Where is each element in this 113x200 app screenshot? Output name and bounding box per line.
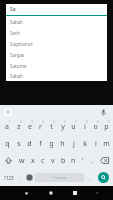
staticText: v xyxy=(51,156,55,166)
staticText: p xyxy=(104,122,109,132)
staticText: 6 xyxy=(64,120,66,124)
staticText: , xyxy=(91,157,93,165)
staticText: Sech xyxy=(10,30,20,36)
button[interactable]: Suggestions xyxy=(4,108,12,116)
staticText: m xyxy=(103,139,110,149)
staticText: 8 xyxy=(86,120,88,124)
button[interactable]: n xyxy=(68,152,78,169)
button[interactable]: h xyxy=(57,135,68,152)
button[interactable]: Back xyxy=(18,186,34,200)
staticText: ' xyxy=(82,156,84,166)
staticText: j xyxy=(73,139,75,149)
staticText: 1 xyxy=(9,120,11,124)
button[interactable]: k xyxy=(79,135,90,152)
staticText: e xyxy=(28,122,32,132)
staticText: c xyxy=(41,156,45,166)
button[interactable]: g xyxy=(46,135,57,152)
button[interactable]: , xyxy=(88,152,96,169)
staticText: ?123 xyxy=(4,175,14,181)
staticText: Sabah xyxy=(10,19,24,25)
staticText: : xyxy=(19,173,21,178)
staticText: g xyxy=(49,139,54,149)
staticText: . xyxy=(89,174,91,182)
button[interactable]: b xyxy=(58,152,68,169)
staticText: Sargas xyxy=(10,52,25,58)
button[interactable]: 0 xyxy=(101,118,112,135)
button[interactable]: Sabah xyxy=(6,71,107,81)
button[interactable]: Recent apps xyxy=(67,186,82,200)
button[interactable]: Backspace xyxy=(96,152,112,169)
button[interactable]: c xyxy=(38,152,48,169)
staticText: d xyxy=(27,139,32,149)
button[interactable]: Voice input xyxy=(98,107,108,117)
button[interactable]: Saturne xyxy=(6,60,107,71)
button[interactable]: 5 xyxy=(46,118,57,135)
staticText: Français xyxy=(53,175,67,180)
button[interactable]: Sagittarius xyxy=(6,38,107,49)
staticText: l xyxy=(95,139,97,149)
staticText: q xyxy=(5,139,10,149)
button[interactable]: Home xyxy=(43,186,58,200)
button[interactable]: d xyxy=(24,135,35,152)
staticText: Sagittarius xyxy=(10,41,33,47)
button[interactable]: 1 xyxy=(1,118,13,135)
staticText: z xyxy=(17,122,21,132)
button[interactable]: Sargas xyxy=(6,49,107,60)
button[interactable]: q xyxy=(1,135,13,152)
staticText: s xyxy=(17,139,21,149)
button[interactable]: Sa xyxy=(6,4,107,15)
button[interactable]: 9 xyxy=(90,118,101,135)
button[interactable]: 4 xyxy=(35,118,46,135)
button[interactable]: w xyxy=(16,152,27,169)
button[interactable]: 3 xyxy=(24,118,35,135)
button[interactable]: x xyxy=(27,152,38,169)
staticText: t xyxy=(50,122,53,132)
staticText: r xyxy=(39,122,42,132)
staticText: Saturne xyxy=(10,63,27,69)
button[interactable]: Space xyxy=(35,173,84,182)
button[interactable]: . xyxy=(85,169,94,186)
staticText: u xyxy=(71,122,76,132)
staticText: 3 xyxy=(31,120,33,124)
button[interactable]: 8 xyxy=(79,118,90,135)
staticText: n xyxy=(71,156,76,166)
button[interactable]: v xyxy=(48,152,58,169)
button[interactable]: Hide keyboard xyxy=(90,186,104,200)
button[interactable]: Sabah xyxy=(6,16,107,27)
staticText: f xyxy=(39,139,42,149)
staticText: w xyxy=(19,156,25,166)
staticText: 4 xyxy=(42,120,44,124)
staticText: ; xyxy=(19,178,21,183)
staticText: i xyxy=(84,122,86,132)
staticText: o xyxy=(93,122,98,132)
staticText: y xyxy=(61,122,65,132)
button[interactable]: 2 xyxy=(13,118,24,135)
staticText: Sabah xyxy=(10,73,24,79)
button[interactable]: l xyxy=(90,135,101,152)
button[interactable]: Shift xyxy=(1,152,16,169)
button[interactable]: Sech xyxy=(6,27,107,38)
staticText: k xyxy=(83,139,87,149)
staticText: 0 xyxy=(108,120,110,124)
staticText: 9 xyxy=(97,120,99,124)
button[interactable]: ?123 xyxy=(1,169,16,186)
staticText: 7 xyxy=(75,120,77,124)
button[interactable]: 6 xyxy=(57,118,68,135)
staticText: h xyxy=(60,139,65,149)
button[interactable]: m xyxy=(101,135,112,152)
staticText: b xyxy=(61,156,66,166)
button[interactable]: Search xyxy=(98,172,109,183)
button[interactable]: s xyxy=(13,135,24,152)
staticText: 5 xyxy=(53,120,55,124)
button[interactable]: Change language xyxy=(24,169,34,186)
button[interactable]: f xyxy=(35,135,46,152)
staticText: 2 xyxy=(20,120,22,124)
button[interactable]: ' xyxy=(78,152,88,169)
button[interactable]: 7 xyxy=(68,118,79,135)
staticText: Sa xyxy=(10,6,16,13)
staticText: x xyxy=(31,156,35,166)
button[interactable]: j xyxy=(68,135,79,152)
staticText: a xyxy=(5,122,9,132)
button[interactable]: : xyxy=(16,169,24,186)
